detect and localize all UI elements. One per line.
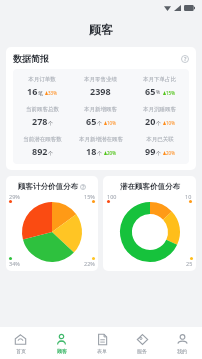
staticText: 个 [97, 150, 102, 156]
staticText: 本月新增潜在顾客 [79, 136, 123, 143]
staticText: 20% [107, 150, 116, 156]
staticText: 34% [9, 260, 20, 267]
button[interactable]: 顾客 [41, 327, 82, 359]
staticText: 22% [84, 260, 95, 267]
button[interactable]: 表单 [82, 327, 122, 359]
button[interactable]: Help [181, 55, 189, 63]
staticText: 潜在顾客价值分布 [120, 182, 180, 191]
staticText: ? [82, 184, 85, 190]
button[interactable]: 本月已关联 [130, 136, 189, 157]
staticText: 本月新增顾客 [84, 106, 117, 113]
staticText: 个 [156, 150, 161, 156]
staticText: 278 [32, 115, 48, 127]
button[interactable]: 首页 [0, 327, 41, 359]
button[interactable]: 我的 [162, 327, 202, 359]
button[interactable]: 本月订单数 [13, 76, 71, 97]
button[interactable]: 本月零售业绩 [71, 76, 130, 97]
staticText: 99 [145, 145, 156, 157]
staticText: 2398 [90, 85, 111, 97]
button[interactable]: 本月下单占比 [130, 76, 189, 97]
staticText: 20 [145, 115, 156, 127]
button[interactable]: 本月新增潜在顾客 [71, 136, 130, 157]
staticText: 25 [186, 260, 193, 267]
staticText: 本月沉睡顾客 [143, 106, 176, 113]
staticText: ? [184, 56, 187, 63]
staticText: 数据简报 [13, 53, 49, 64]
staticText: 29% [9, 193, 20, 200]
button[interactable]: 本月沉睡顾客 [130, 106, 189, 127]
staticText: 100 [107, 193, 117, 200]
staticText: 顾客 [57, 348, 67, 354]
staticText: 顾客 [89, 22, 113, 37]
staticText: 首页 [16, 348, 26, 354]
staticText: 65 [86, 115, 97, 127]
button[interactable]: 服务 [122, 327, 162, 359]
staticText: 个 [48, 150, 53, 156]
staticText: 个 [97, 120, 102, 126]
staticText: 本月零售业绩 [84, 76, 117, 83]
staticText: 18 [86, 145, 97, 157]
staticText: 16 [27, 85, 38, 97]
staticText: 10 [185, 193, 192, 200]
staticText: 当前潜在顾客数 [23, 136, 62, 143]
staticText: 892 [32, 145, 48, 157]
staticText: 笔 [38, 90, 43, 96]
staticText: 15% [84, 193, 95, 200]
staticText: 15% [166, 90, 175, 96]
button[interactable]: 本月新增顾客 [71, 106, 130, 127]
staticText: % [156, 89, 161, 96]
staticText: 65 [145, 85, 156, 97]
button[interactable]: 当前顾客总数 [13, 106, 71, 127]
staticText: 我的 [177, 348, 187, 354]
staticText: 本月订单数 [28, 76, 56, 83]
staticText: 20% [166, 150, 175, 156]
staticText: 10% [166, 120, 175, 126]
staticText: 本月下单占比 [143, 76, 176, 83]
staticText: 个 [48, 120, 53, 126]
button[interactable]: Help [80, 184, 86, 190]
button[interactable]: 当前潜在顾客数 [13, 136, 71, 157]
staticText: 10% [107, 120, 116, 126]
staticText: 顾客计分价值分布 [18, 182, 78, 191]
staticText: 个 [156, 120, 161, 126]
staticText: 服务 [137, 348, 147, 354]
staticText: 表单 [97, 348, 107, 354]
staticText: 33% [48, 90, 57, 96]
staticText: 本月已关联 [146, 136, 174, 143]
staticText: 当前顾客总数 [26, 106, 59, 113]
